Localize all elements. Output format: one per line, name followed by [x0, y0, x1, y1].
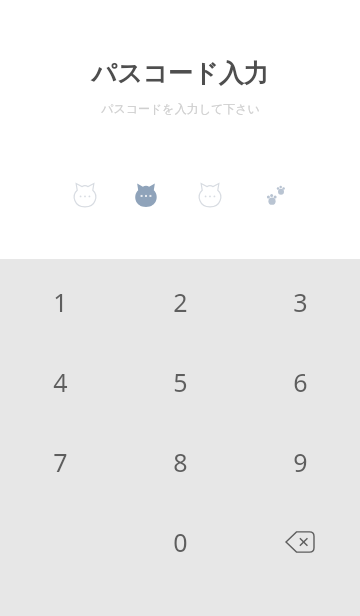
button[interactable]: 1	[0, 262, 120, 342]
staticText: パスコード入力	[91, 58, 269, 89]
staticText: 5	[173, 365, 188, 399]
staticText: 1	[53, 285, 68, 319]
staticText: 8	[173, 445, 188, 479]
button[interactable]: 6	[240, 342, 360, 422]
button[interactable]: Backspace	[240, 502, 360, 582]
staticText: パスコードを入力して下さい	[101, 101, 260, 116]
staticText: 3	[293, 285, 308, 319]
staticText: 7	[53, 445, 68, 479]
staticText: 4	[53, 365, 68, 399]
staticText: 0	[173, 525, 188, 559]
button[interactable]: 7	[0, 422, 120, 502]
button[interactable]: 5	[120, 342, 240, 422]
staticText: 2	[173, 285, 188, 319]
button[interactable]: 8	[120, 422, 240, 502]
button[interactable]: 0	[120, 502, 240, 582]
button[interactable]: 4	[0, 342, 120, 422]
button[interactable]: 2	[120, 262, 240, 342]
staticText: 6	[293, 365, 308, 399]
staticText: 9	[293, 445, 308, 479]
button[interactable]: 9	[240, 422, 360, 502]
button[interactable]: 3	[240, 262, 360, 342]
